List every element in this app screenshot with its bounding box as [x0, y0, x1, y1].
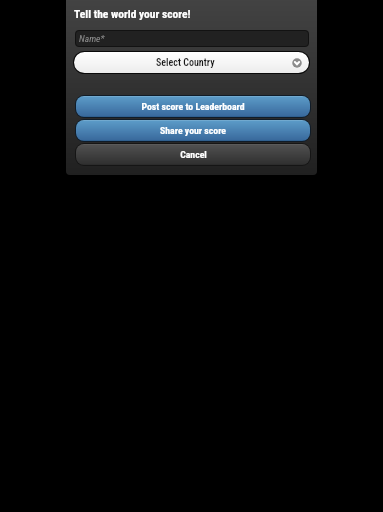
- other: Select Country: [292, 58, 302, 68]
- staticText: Post score to Leaderboard: [141, 101, 245, 112]
- staticText: Share your score: [160, 125, 226, 136]
- staticText: Tell the world your score!: [74, 7, 191, 20]
- button[interactable]: Name*: [75, 30, 309, 47]
- staticText: Select Country: [156, 57, 215, 69]
- button[interactable]: Select Country: [74, 52, 309, 73]
- staticText: Cancel: [180, 149, 207, 160]
- staticText: Name*: [79, 33, 105, 44]
- button[interactable]: Share your score: [76, 120, 310, 141]
- button[interactable]: Post score to Leaderboard: [76, 96, 310, 117]
- button[interactable]: Cancel: [76, 144, 310, 165]
